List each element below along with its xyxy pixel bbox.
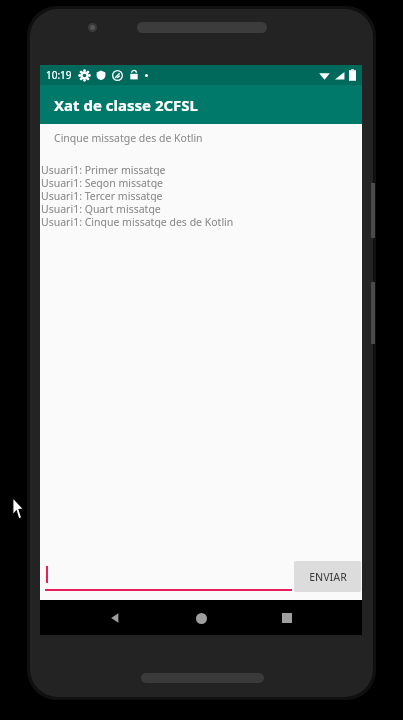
button[interactable]: ENVIAR [294,561,361,592]
button[interactable]: Usuari1: Primer missatge [40,163,362,176]
button[interactable]: Usuari1: Segon missatge [40,176,362,189]
button[interactable]: Usuari1: Tercer missatge [40,189,362,202]
staticText: Usuari1: Primer missatge [41,163,166,176]
staticText: 10:19 [46,68,72,82]
staticText: Usuari1: Segon missatge [41,176,164,189]
staticText: Xat de classe 2CFSL [54,95,198,115]
staticText: Usuari1: Quart missatge [41,202,161,215]
staticText: ENVIAR [309,570,347,584]
staticText: Usuari1: Tercer missatge [41,189,163,202]
button[interactable]: Home [186,603,216,633]
button[interactable]: Usuari1: Cinque missatge des de Kotlin [40,215,362,228]
button[interactable]: Recent apps [272,603,302,633]
staticText: Usuari1: Cinque missatge des de Kotlin [41,215,234,228]
button[interactable]: Back [100,603,130,633]
button[interactable]: Usuari1: Quart missatge [40,202,362,215]
button[interactable] [45,561,292,595]
staticText: Cinque missatge des de Kotlin [54,131,203,145]
